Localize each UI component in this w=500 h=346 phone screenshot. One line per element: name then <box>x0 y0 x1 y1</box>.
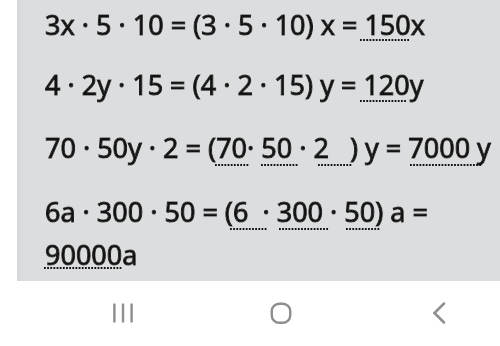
staticText: 4 · 2y · 15 = (4 · 2 · 15) y = 120y <box>45 66 424 103</box>
button[interactable]: Recent apps <box>99 289 147 337</box>
button[interactable]: Back <box>413 289 461 337</box>
staticText: 90000a <box>45 236 138 273</box>
staticText: 6a · 300 · 50 = (6 · 300 · 50) a = <box>45 193 428 230</box>
button[interactable]: Home <box>257 289 305 337</box>
staticText: 70 · 50y · 2 = (70· 50 · 2 ) y = 7000 y <box>45 129 491 166</box>
staticText: 3x · 5 · 10 = (3 · 5 · 10) x = 150x <box>45 6 426 43</box>
staticText: 6a · 300 · 50 = (6 · 300 · 50) a = <box>45 193 428 230</box>
staticText: 4 · 2y · 15 = (4 · 2 · 15) y = 120y <box>45 66 424 103</box>
staticText: 90000a <box>45 236 138 273</box>
staticText: 70 · 50y · 2 = (70· 50 · 2 ) y = 7000 y <box>45 129 491 166</box>
staticText: 3x · 5 · 10 = (3 · 5 · 10) x = 150x <box>45 6 426 43</box>
